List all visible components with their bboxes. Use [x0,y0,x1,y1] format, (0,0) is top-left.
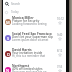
staticText: 10:12 [57,17,64,21]
button[interactable]: Star [58,69,62,72]
staticText: M [6,20,10,25]
button[interactable]: Star [58,37,62,41]
staticText: 7:55 [57,65,63,69]
staticText: David Harris [12,48,54,52]
button[interactable]: S [3,32,66,48]
staticText: Hi, this is a reminder that [12,54,54,58]
staticText: Monica Miller [12,16,54,20]
staticText: Looking forward to seeing [12,22,54,26]
staticText: Shop now and save big on [12,70,54,72]
button[interactable]: D [3,48,66,64]
button[interactable]: M [3,16,66,32]
button[interactable]: N [3,64,66,72]
staticText: 40% off limited styles [12,67,54,71]
staticText: Lorem ipsum dolor sit amet [12,38,54,42]
staticText: N [6,68,10,72]
staticText: Picture for Security [12,19,54,23]
button[interactable]: Search [3,0,66,8]
staticText: S [7,36,10,41]
other: Search [5,2,9,6]
staticText: D [7,52,10,57]
staticText: Search [11,2,21,6]
staticText: 9:40 [57,33,63,37]
staticText: Don't let your Superman slip away [12,35,54,39]
button[interactable]: Star [58,53,62,57]
staticText: Social Feed Sao Francisco [12,32,54,36]
staticText: Your invitation inside [12,51,54,55]
staticText: Northwest [12,64,54,68]
button[interactable]: Star [58,21,62,25]
staticText: Today [11,10,19,14]
staticText: 8:12 [57,49,63,53]
